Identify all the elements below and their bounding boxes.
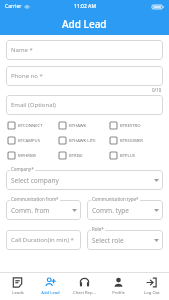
button[interactable]: Comm. type xyxy=(87,200,163,220)
staticText: Call Duration(in min) * xyxy=(11,236,74,244)
staticText: BTHAWK LITE xyxy=(69,138,96,144)
button[interactable]: Name * xyxy=(6,40,163,60)
button[interactable]: Chart Report xyxy=(68,273,101,300)
staticText: BTCONNECT xyxy=(18,123,43,129)
button[interactable]: Email (Optional) xyxy=(6,95,163,115)
staticText: Add Lead xyxy=(62,17,107,31)
button[interactable]: BTRISE xyxy=(59,152,110,159)
staticText: 11:02 AM xyxy=(74,3,96,10)
staticText: Name * xyxy=(11,46,33,54)
staticText: Chart Rep... xyxy=(73,290,96,296)
other: Leads xyxy=(12,277,23,288)
staticText: Add Lead xyxy=(41,290,60,296)
button[interactable]: BTPLUS xyxy=(110,152,161,159)
staticText: Email (Optional) xyxy=(11,101,56,109)
button[interactable]: Select role xyxy=(87,230,163,250)
other: Log Out xyxy=(146,277,157,288)
staticText: BTCAMPUS xyxy=(18,138,40,144)
button[interactable]: Phone no * xyxy=(6,66,163,86)
button[interactable]: Log Out xyxy=(135,273,168,300)
staticText: BTRESTRO xyxy=(120,123,141,129)
staticText: BTROOMER xyxy=(120,138,143,144)
other: Profile xyxy=(113,277,124,288)
staticText: Comm. from xyxy=(11,206,50,215)
staticText: Company* xyxy=(11,166,34,172)
button[interactable]: BTHAWK xyxy=(59,122,110,129)
button[interactable]: Select company xyxy=(6,170,163,190)
button[interactable]: BTCONNECT xyxy=(8,122,59,129)
button[interactable]: BTCAMPUS xyxy=(8,137,59,144)
button[interactable]: BTROOMER xyxy=(110,137,161,144)
button[interactable]: BTHAWK LITE xyxy=(59,137,110,144)
button[interactable]: MYHRMS xyxy=(8,152,59,159)
staticText: Leads xyxy=(12,290,24,296)
staticText: BTHAWK xyxy=(69,123,87,129)
staticText: BTRISE xyxy=(69,153,83,159)
staticText: 0/10 xyxy=(152,87,162,93)
staticText: Communication from* xyxy=(11,196,59,202)
button[interactable]: Add Lead xyxy=(34,273,67,300)
staticText: Select company xyxy=(11,176,59,185)
staticText: BTPLUS xyxy=(120,153,136,159)
staticText: Select role xyxy=(92,236,124,245)
staticText: Profile xyxy=(112,290,125,296)
button[interactable]: Leads xyxy=(1,273,34,300)
button[interactable]: Profile xyxy=(102,273,135,300)
staticText: Carrier xyxy=(5,3,22,10)
staticText: Comm. type xyxy=(92,206,129,215)
staticText: Role* xyxy=(92,226,104,232)
staticText: Log Out xyxy=(144,290,160,296)
staticText: Phone no * xyxy=(11,72,43,80)
staticText: Communication type* xyxy=(92,196,139,202)
button[interactable]: BTRESTRO xyxy=(110,122,161,129)
other: Chart Report xyxy=(79,277,90,288)
other: Add Lead xyxy=(45,277,56,288)
staticText: MYHRMS xyxy=(18,153,36,159)
button[interactable]: Call Duration(in min) * xyxy=(6,230,81,250)
button[interactable]: Comm. from xyxy=(6,200,81,220)
